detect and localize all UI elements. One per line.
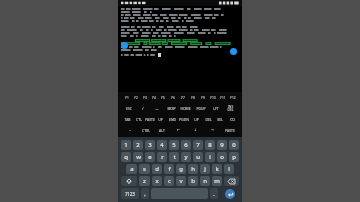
- button[interactable]: F4: [149, 94, 158, 102]
- button[interactable]: r: [157, 152, 167, 162]
- button[interactable]: CO: [226, 115, 238, 123]
- button[interactable]: F1: [122, 94, 131, 102]
- button[interactable]: a: [126, 164, 137, 174]
- button[interactable]: BKSP: [164, 104, 178, 112]
- button[interactable]: p: [229, 152, 239, 162]
- button[interactable]: u: [193, 152, 203, 162]
- button[interactable]: j: [200, 164, 210, 174]
- button[interactable]: PASTE: [144, 115, 155, 123]
- button[interactable]: 1: [121, 140, 131, 150]
- staticText: y: [184, 153, 188, 161]
- button[interactable]: v: [176, 176, 186, 186]
- staticText: 7: [196, 141, 200, 149]
- button[interactable]: x: [152, 176, 162, 186]
- button[interactable]: F11: [218, 94, 228, 102]
- button[interactable]: m: [212, 176, 222, 186]
- button[interactable]: ,: [141, 188, 149, 199]
- button[interactable]: z: [139, 176, 150, 186]
- button[interactable]: PGUP: [193, 104, 208, 112]
- button[interactable]: LFT: [208, 104, 223, 112]
- button[interactable]: /: [136, 104, 150, 112]
- button[interactable]: q: [121, 152, 131, 162]
- button[interactable]: PGDN: [178, 115, 190, 123]
- staticText: o: [220, 153, 224, 161]
- staticText: f: [168, 165, 171, 173]
- button[interactable]: Selection start handle: [121, 42, 128, 49]
- button[interactable]: o: [217, 152, 227, 162]
- button[interactable]: F10: [208, 94, 218, 102]
- button[interactable]: F6: [168, 94, 178, 102]
- staticText: q: [124, 153, 128, 161]
- button[interactable]: c: [164, 176, 174, 186]
- button[interactable]: Shift: [121, 176, 137, 186]
- button[interactable]: UP: [190, 115, 202, 123]
- button[interactable]: F3: [140, 94, 149, 102]
- button[interactable]: 9: [217, 140, 227, 150]
- button[interactable]: s: [139, 164, 150, 174]
- button[interactable]: UP: [155, 115, 166, 123]
- button[interactable]: ?123: [121, 188, 139, 199]
- button[interactable]: d: [152, 164, 162, 174]
- button[interactable]: CTL: [133, 115, 144, 123]
- button[interactable]: PASTE: [221, 126, 238, 134]
- button[interactable]: n: [200, 176, 210, 186]
- button[interactable]: F5: [158, 94, 168, 102]
- button[interactable]: y: [181, 152, 191, 162]
- staticText: k: [215, 165, 219, 173]
- staticText: ,: [144, 190, 146, 197]
- button[interactable]: Selection end handle: [230, 48, 237, 55]
- button[interactable]: TAB: [122, 115, 133, 123]
- button[interactable]: k: [212, 164, 222, 174]
- button[interactable]: Backspace: [224, 176, 239, 186]
- button[interactable]: F2: [131, 94, 140, 102]
- staticText: r: [161, 153, 164, 161]
- staticText: ?123: [125, 191, 135, 197]
- button[interactable]: 2: [133, 140, 143, 150]
- button[interactable]: i: [205, 152, 215, 162]
- button[interactable]: 3: [145, 140, 155, 150]
- button[interactable]: ←: [170, 126, 187, 134]
- button[interactable]: 7: [193, 140, 203, 150]
- staticText: 1: [124, 141, 128, 149]
- button[interactable]: CTRL: [138, 126, 154, 134]
- staticText: HOME: [180, 106, 191, 111]
- button[interactable]: F7: [178, 94, 188, 102]
- button[interactable]: HOME: [178, 104, 193, 112]
- button[interactable]: t: [169, 152, 179, 162]
- button[interactable]: 5: [169, 140, 179, 150]
- staticText: 2: [136, 141, 140, 149]
- button[interactable]: SEL: [214, 115, 226, 123]
- button[interactable]: DEL: [202, 115, 214, 123]
- staticText: F6: [171, 96, 175, 100]
- button[interactable]: g: [176, 164, 186, 174]
- button[interactable]: f: [164, 164, 174, 174]
- staticText: e: [148, 153, 152, 161]
- button[interactable]: 8: [205, 140, 215, 150]
- button[interactable]: 6: [181, 140, 191, 150]
- button[interactable]: e: [145, 152, 155, 162]
- button[interactable]: →: [204, 126, 221, 134]
- button[interactable]: w: [133, 152, 143, 162]
- button[interactable]: ALT: [154, 126, 170, 134]
- button[interactable]: INS DEL: [223, 104, 238, 112]
- button[interactable]: Enter: [225, 189, 235, 199]
- button[interactable]: l: [224, 164, 234, 174]
- button[interactable]: ~: [122, 126, 138, 134]
- button[interactable]: ↓: [187, 126, 204, 134]
- button[interactable]: F8: [188, 94, 198, 102]
- button[interactable]: b: [188, 176, 198, 186]
- staticText: SEL: [217, 117, 223, 122]
- button[interactable]: 4: [157, 140, 167, 150]
- button[interactable]: —: [150, 104, 164, 112]
- staticText: 0: [232, 141, 236, 149]
- button[interactable]: ESC: [122, 104, 136, 112]
- button[interactable]: .: [210, 188, 218, 199]
- button[interactable]: 0: [229, 140, 239, 150]
- button[interactable]: h: [188, 164, 198, 174]
- button[interactable]: END: [166, 115, 178, 123]
- staticText: CTL: [136, 117, 142, 122]
- staticText: ←: [177, 128, 180, 132]
- button[interactable]: F9: [198, 94, 208, 102]
- button[interactable]: F12: [228, 94, 238, 102]
